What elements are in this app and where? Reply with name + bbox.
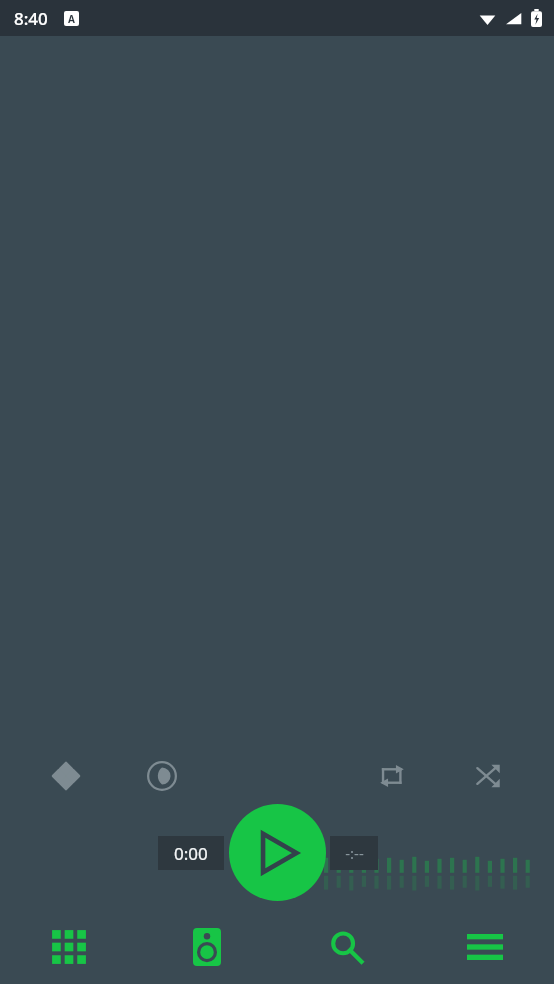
staticText: 8:40 [14,7,48,30]
button[interactable]: Library [0,910,138,984]
staticText: 0:00 [174,842,208,865]
staticText: -:-- [345,843,364,863]
button[interactable]: Repeat [368,752,416,800]
button[interactable]: Search [276,910,415,984]
button[interactable]: Equalizer [42,752,90,800]
button[interactable]: 0:00 [158,836,224,870]
button[interactable]: -:-- [330,836,378,870]
button[interactable]: Sleep timer [138,752,186,800]
button[interactable]: Play [229,804,326,901]
button[interactable]: Now playing [138,910,276,984]
staticText: A [68,12,75,26]
button[interactable]: Menu [415,910,554,984]
button[interactable]: Shuffle [464,752,512,800]
